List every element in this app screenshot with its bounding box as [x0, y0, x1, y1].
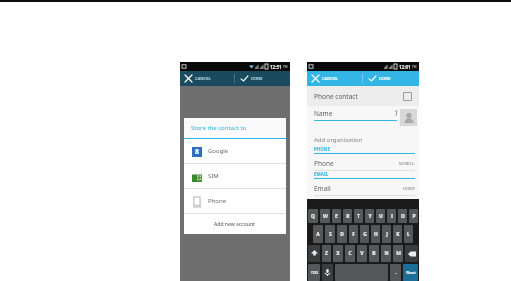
staticText: H [374, 231, 378, 238]
staticText: 8 [195, 147, 200, 157]
button[interactable]: Z [322, 245, 331, 262]
staticText: T [357, 213, 360, 220]
staticText: MOBILE [399, 161, 415, 166]
staticText: Z [325, 250, 328, 257]
button[interactable]: Shift [308, 245, 320, 262]
staticText: D [340, 231, 344, 238]
button[interactable]: T [354, 209, 363, 223]
staticText: U [379, 213, 383, 220]
staticText: R [346, 213, 350, 220]
staticText: C [348, 250, 352, 257]
button[interactable]: Voice input [322, 264, 333, 281]
staticText: P [412, 213, 416, 220]
button[interactable]: W [320, 209, 330, 223]
staticText: E [335, 213, 338, 220]
staticText: K [396, 231, 400, 238]
button[interactable]: SIM [184, 164, 286, 188]
button[interactable]: M [393, 245, 403, 262]
button[interactable]: N [381, 245, 391, 262]
button[interactable]: . [390, 264, 401, 281]
staticText: F [352, 231, 355, 238]
staticText: O [401, 213, 405, 220]
staticText: PM [283, 65, 288, 69]
staticText: Phone [314, 159, 334, 168]
button[interactable]: L [404, 225, 413, 243]
staticText: DONE [379, 76, 391, 81]
staticText: G [363, 231, 367, 238]
staticText: EMAIL [314, 171, 329, 177]
button[interactable]: Phone [184, 189, 286, 213]
staticText: A [316, 231, 320, 238]
button[interactable]: !123 [308, 264, 320, 281]
staticText: Phone contact [314, 92, 358, 101]
button[interactable]: I [387, 209, 396, 223]
button[interactable]: Q [308, 209, 318, 223]
button[interactable]: A [313, 225, 323, 243]
button[interactable]: E [332, 209, 341, 223]
button[interactable]: Phone [307, 154, 419, 170]
staticText: B [372, 250, 376, 257]
button[interactable]: CANCEL [180, 71, 234, 86]
button[interactable]: S [325, 225, 335, 243]
button[interactable]: J [382, 225, 391, 243]
staticText: L [407, 231, 410, 238]
staticText: I [391, 213, 393, 220]
button[interactable]: Next [403, 264, 418, 281]
button[interactable]: Add organization [307, 133, 419, 146]
staticText: DONE [251, 76, 263, 81]
button[interactable]: DONE [363, 71, 419, 86]
button[interactable]: CANCEL [307, 71, 362, 86]
staticText: . [395, 269, 397, 276]
staticText: M [396, 250, 401, 257]
button[interactable]: H [371, 225, 380, 243]
button[interactable]: P [409, 209, 418, 223]
staticText: N [384, 250, 389, 257]
staticText: V [360, 250, 364, 257]
button[interactable]: C [345, 245, 355, 262]
button[interactable]: O [398, 209, 407, 223]
button[interactable]: D [337, 225, 347, 243]
staticText: !123 [311, 270, 318, 275]
staticText: CANCEL [195, 76, 211, 81]
button[interactable]: Phone contact [307, 86, 419, 106]
staticText: PHONE [314, 146, 330, 152]
staticText: SIM [208, 172, 219, 180]
staticText: CANCEL [322, 76, 338, 81]
button[interactable]: K [393, 225, 402, 243]
staticText: Store the contact to [191, 124, 247, 132]
staticText: X [336, 250, 340, 257]
button[interactable]: U [376, 209, 385, 223]
staticText: W [323, 213, 328, 220]
staticText: Name [314, 109, 333, 118]
staticText: Email [314, 184, 331, 193]
button[interactable]: Y [365, 209, 374, 223]
button[interactable]: Add new account [184, 214, 286, 234]
staticText: J [386, 231, 388, 238]
staticText: Next [406, 270, 416, 275]
button[interactable]: Email [307, 179, 419, 195]
staticText: 12:01 [399, 64, 411, 70]
staticText: Add new account [214, 221, 256, 228]
staticText: S [329, 231, 332, 238]
button[interactable]: 8 [184, 139, 286, 163]
staticText: Phone [208, 197, 227, 205]
staticText: 12:51 [270, 64, 282, 70]
staticText: Google [208, 147, 229, 155]
button[interactable]: DONE [235, 71, 290, 86]
button[interactable]: R [343, 209, 352, 223]
button[interactable]: B [369, 245, 379, 262]
button[interactable]: F [349, 225, 358, 243]
button[interactable]: Backspace [405, 245, 418, 262]
button[interactable]: X [333, 245, 343, 262]
staticText: Y [368, 213, 372, 220]
button[interactable]: G [360, 225, 369, 243]
staticText: HOME [403, 186, 415, 191]
staticText: Q [311, 213, 315, 220]
staticText: Add organization [314, 136, 363, 144]
button[interactable]: V [357, 245, 367, 262]
staticText: PM [412, 65, 417, 69]
